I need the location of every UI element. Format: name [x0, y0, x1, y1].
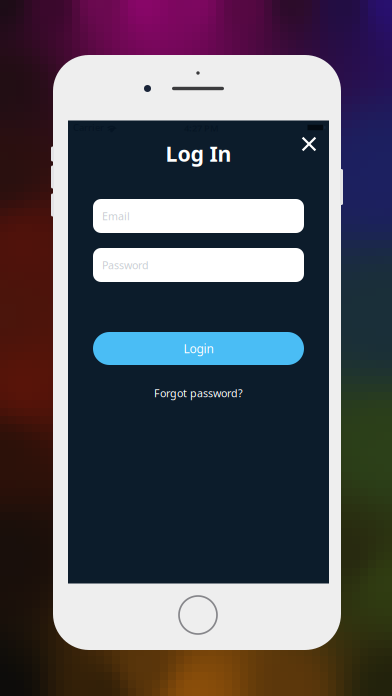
staticText: Forgot password? [154, 386, 243, 400]
button[interactable]: Close [294, 129, 324, 159]
staticText: Login [183, 340, 213, 356]
button[interactable]: Password [93, 248, 304, 282]
staticText: Log In [165, 139, 231, 168]
button[interactable]: Forgot password? [144, 381, 253, 405]
staticText: Email [102, 209, 130, 223]
staticText: Password [102, 258, 149, 272]
button[interactable]: Email [93, 199, 304, 233]
button[interactable]: Login [93, 332, 304, 365]
